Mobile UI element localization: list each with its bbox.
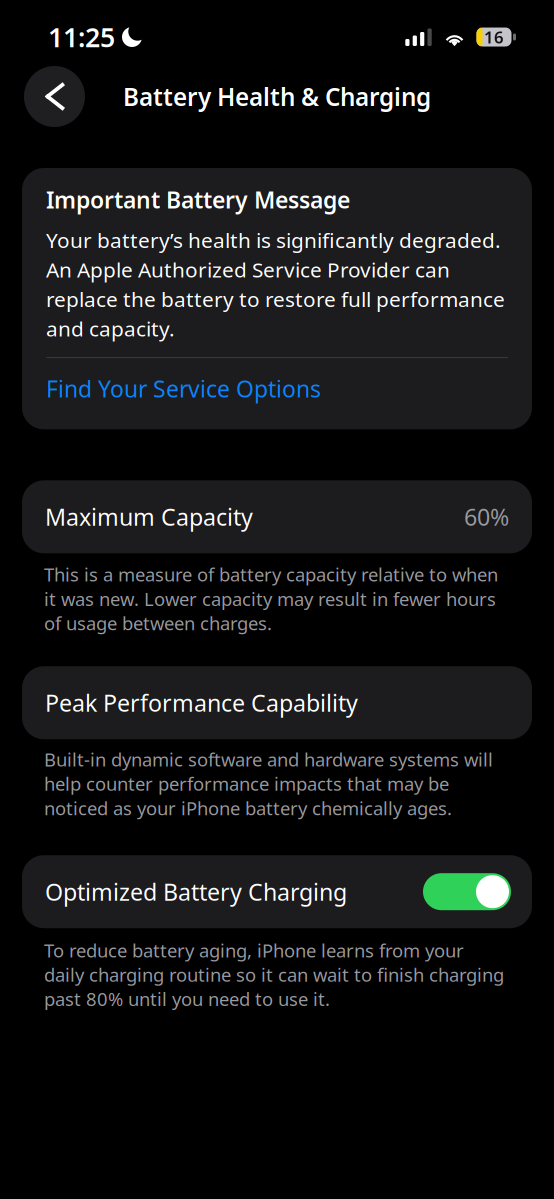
staticText: Your battery’s health is significantly d… <box>46 225 505 343</box>
button[interactable]: Back <box>24 66 85 127</box>
staticText: Maximum Capacity <box>45 501 253 533</box>
staticText: Battery Health & Charging <box>123 80 431 113</box>
button[interactable]: Optimized Battery Charging <box>0 855 554 928</box>
staticText: Important Battery Message <box>46 184 350 215</box>
staticText: Built-in dynamic software and hardware s… <box>44 747 493 820</box>
staticText: To reduce battery aging, iPhone learns f… <box>44 938 504 1011</box>
staticText: 11:25 <box>48 19 115 55</box>
staticText: This is a measure of battery capacity re… <box>44 562 498 635</box>
staticText: Peak Performance Capability <box>45 687 358 719</box>
staticText: 16 <box>484 26 504 48</box>
staticText: 60% <box>464 501 509 533</box>
button[interactable]: Maximum Capacity <box>0 480 554 553</box>
button[interactable]: Find Your Service Options <box>46 373 508 404</box>
button[interactable]: Peak Performance Capability <box>0 666 554 739</box>
staticText: Find Your Service Options <box>46 373 321 404</box>
staticText: Optimized Battery Charging <box>45 876 347 907</box>
